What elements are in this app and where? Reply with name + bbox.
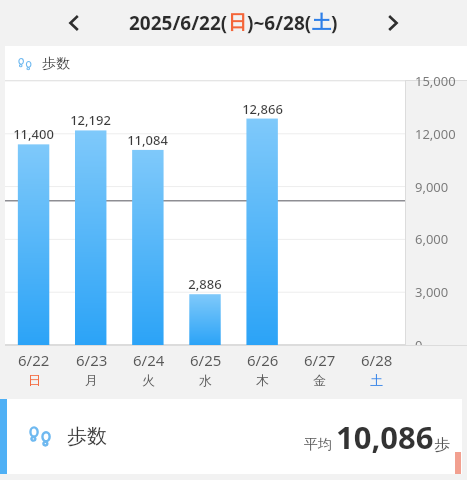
staticText: 10,086 — [336, 416, 434, 458]
staticText: ) — [331, 10, 338, 36]
staticText: 6,000 — [415, 230, 449, 248]
staticText: 12,000 — [415, 125, 456, 143]
staticText: 日 — [228, 11, 247, 35]
staticText: 6/27 — [304, 350, 336, 370]
staticText: 日 — [28, 372, 41, 388]
staticText: 6/28 — [361, 350, 393, 370]
staticText: 12,192 — [70, 111, 111, 129]
button[interactable]: 歩数 — [0, 399, 462, 474]
staticText: 6/25 — [190, 350, 222, 370]
staticText: 6/23 — [76, 350, 108, 370]
staticText: 6/24 — [133, 350, 165, 370]
staticText: 3,000 — [415, 283, 449, 301]
button[interactable]: 6/28 — [348, 345, 405, 388]
staticText: 歩 — [434, 435, 450, 455]
button[interactable]: Previous week — [56, 5, 92, 41]
staticText: 12,866 — [242, 100, 283, 118]
staticText: 6/22 — [18, 350, 50, 370]
button[interactable]: 6/22 — [5, 345, 63, 388]
staticText: 火 — [142, 372, 155, 388]
button[interactable]: 6/24 — [120, 345, 177, 388]
button[interactable]: 6/27 — [291, 345, 348, 388]
staticText: 2025/6/22( — [129, 10, 228, 36]
staticText: )~6/28( — [247, 10, 312, 36]
button[interactable]: 6/23 — [63, 345, 120, 388]
button[interactable]: Next week — [375, 5, 411, 41]
staticText: 歩数 — [67, 424, 107, 449]
staticText: 歩数 — [42, 55, 70, 73]
staticText: 土 — [312, 11, 331, 35]
staticText: 6/26 — [247, 350, 279, 370]
button[interactable]: 6/25 — [177, 345, 234, 388]
staticText: 11,400 — [13, 125, 54, 143]
staticText: 水 — [199, 372, 212, 388]
staticText: 土 — [370, 372, 383, 388]
staticText: 2,886 — [188, 275, 222, 293]
staticText: 11,084 — [127, 131, 168, 149]
staticText: 月 — [85, 372, 98, 388]
button[interactable]: 6/26 — [234, 345, 291, 388]
staticText: 0 — [415, 336, 423, 354]
staticText: 木 — [256, 372, 269, 388]
staticText: 9,000 — [415, 178, 449, 196]
staticText: 金 — [313, 372, 326, 388]
staticText: 平均 — [304, 436, 332, 454]
staticText: 15,000 — [415, 72, 456, 90]
